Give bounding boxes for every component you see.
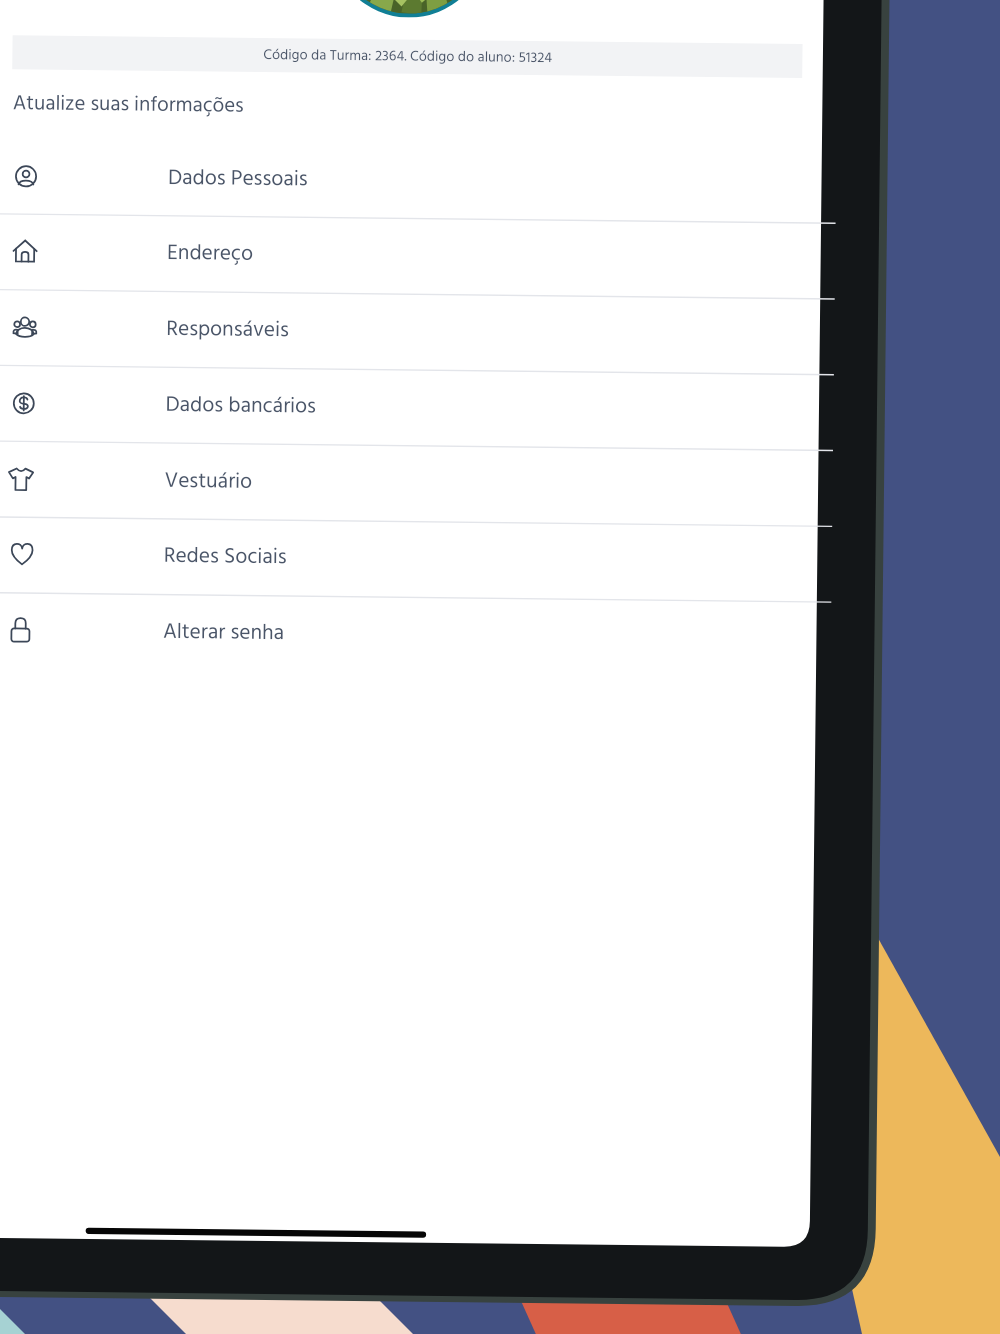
other: Redes Sociais	[0, 516, 164, 594]
staticText: Dados bancários	[165, 388, 317, 424]
staticText: Redes Sociais	[164, 539, 287, 574]
button[interactable]: Alterar senha	[0, 592, 815, 677]
other: Alterar senha	[0, 592, 163, 670]
button[interactable]: Dados Pessoais	[0, 138, 820, 223]
other: Dados bancários	[0, 365, 166, 443]
other: Endereço	[0, 213, 168, 291]
staticText: Dados Pessoais	[168, 161, 308, 196]
button[interactable]: Dados bancários	[0, 365, 818, 450]
staticText: Vestuário	[164, 464, 253, 499]
staticText: Código da Turma: 2364. Código do aluno: …	[263, 44, 552, 70]
button[interactable]: Redes Sociais	[0, 516, 816, 601]
other: Responsáveis	[0, 289, 167, 367]
button[interactable]: Vestuário	[0, 441, 817, 526]
staticText: Endereço	[167, 236, 253, 271]
staticText: Atualize suas informações	[13, 87, 244, 123]
button[interactable]: Responsáveis	[0, 289, 819, 374]
staticText: Alterar senha	[163, 615, 285, 650]
other: Dados Pessoais	[0, 138, 168, 216]
staticText: Responsáveis	[166, 312, 289, 347]
other: Vestuário	[0, 441, 165, 519]
button[interactable]: Endereço	[0, 213, 820, 298]
